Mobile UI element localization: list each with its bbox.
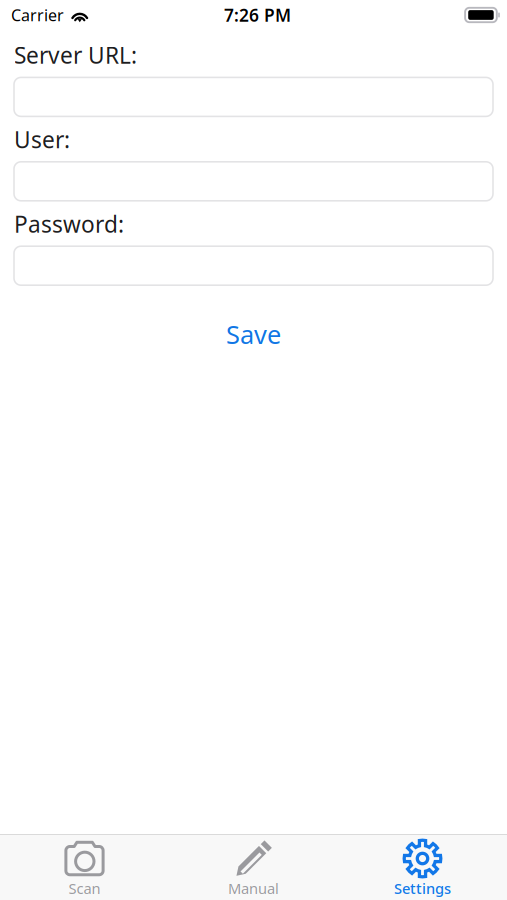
button[interactable]: Scan	[0, 835, 169, 900]
button[interactable]: Server URL	[14, 77, 493, 116]
staticText: User:	[14, 124, 70, 154]
staticText: Settings	[394, 878, 451, 898]
staticText: 7:26 PM	[224, 3, 291, 26]
button[interactable]: Manual	[169, 835, 338, 900]
staticText: Server URL:	[14, 40, 137, 70]
button[interactable]: Settings	[338, 835, 507, 900]
button[interactable]: Save	[14, 318, 493, 350]
staticText: Scan	[68, 878, 100, 898]
staticText: Password:	[14, 209, 124, 239]
button[interactable]: Password	[14, 246, 493, 285]
staticText: Carrier	[11, 4, 64, 26]
button[interactable]: User	[14, 162, 493, 201]
staticText: Manual	[228, 878, 279, 898]
staticText: Save	[226, 317, 281, 351]
